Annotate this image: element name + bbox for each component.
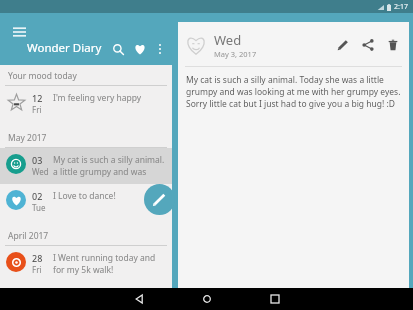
button[interactable]: 28	[0, 246, 172, 282]
button[interactable]: Delete	[383, 35, 403, 55]
staticText: 2:17	[394, 2, 408, 12]
staticText: May 2017	[8, 132, 47, 144]
staticText: for my 5k walk!	[53, 264, 114, 276]
button[interactable]: Recent apps	[258, 288, 292, 310]
staticText: My cat is such a silly animal. Today she…	[186, 74, 401, 110]
staticText: I Love to dance!	[53, 190, 116, 202]
staticText: April 2017	[8, 230, 49, 242]
button[interactable]: Home	[190, 288, 224, 310]
staticText: 03	[32, 154, 43, 166]
staticText: Tue	[32, 202, 46, 213]
staticText: Fri	[32, 104, 42, 115]
button[interactable]: Edit	[333, 35, 353, 55]
staticText: 02	[32, 190, 43, 202]
staticText: My cat is such a silly animal. Today she…	[53, 154, 168, 166]
button[interactable]: Open navigation drawer	[9, 22, 29, 42]
staticText: Fri	[32, 264, 42, 275]
staticText: May 3, 2017	[214, 49, 257, 59]
button[interactable]: Back	[122, 288, 156, 310]
button[interactable]: Search	[107, 38, 129, 60]
button[interactable]: 12	[0, 86, 172, 121]
staticText: a little grumpy and was looking at me wi…	[53, 166, 168, 178]
staticText: 28	[32, 252, 43, 264]
staticText: I Went running today and got a new recor…	[53, 252, 168, 264]
button[interactable]: Share	[358, 35, 378, 55]
staticText: Wed	[214, 31, 242, 49]
staticText: Wed	[32, 166, 49, 177]
staticText: Wonder Diary	[27, 40, 102, 56]
button[interactable]: 02	[0, 184, 172, 219]
button[interactable]: Favourites	[129, 38, 151, 60]
staticText: Your mood today	[8, 70, 77, 82]
staticText: 12	[32, 92, 43, 104]
button[interactable]: 03	[0, 148, 172, 184]
button[interactable]: More options	[151, 40, 169, 58]
button[interactable]: New entry	[144, 184, 175, 215]
staticText: I'm feeling very happy today!	[53, 92, 168, 104]
